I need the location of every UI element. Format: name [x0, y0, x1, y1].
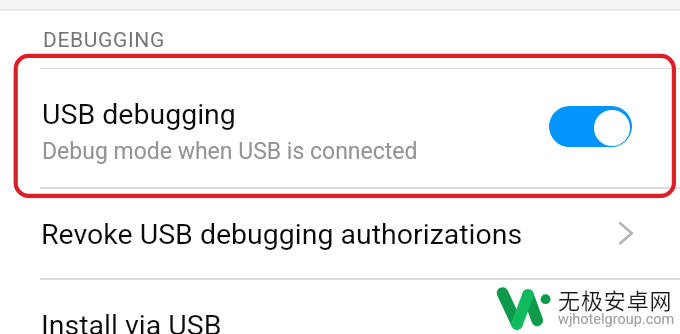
staticText: 无极安卓网: [558, 283, 673, 315]
staticText: Install via USB: [41, 309, 222, 334]
staticText: Debug mode when USB is connected: [42, 138, 418, 165]
button[interactable]: USB debugging switch, on: [549, 106, 632, 147]
staticText: DEBUGGING: [43, 28, 165, 53]
other: Open: [617, 220, 635, 246]
button[interactable]: Revoke USB debugging authorizations: [0, 188, 680, 274]
staticText: wjhotelgroup.com: [558, 311, 675, 328]
staticText: USB debugging: [42, 98, 236, 131]
staticText: Revoke USB debugging authorizations: [41, 218, 523, 251]
button[interactable]: Install via USB: [0, 279, 680, 334]
button[interactable]: USB debugging: [0, 68, 680, 187]
